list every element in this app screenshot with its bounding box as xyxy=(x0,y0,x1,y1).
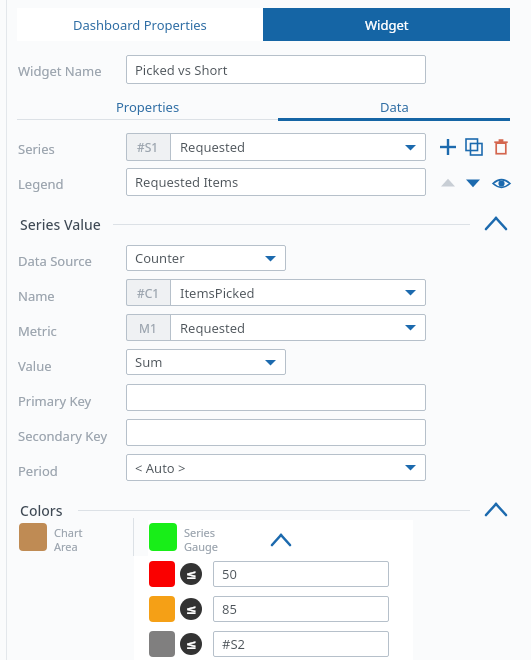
staticText: Sum xyxy=(135,353,163,371)
staticText: 50 xyxy=(222,565,237,583)
staticText: Name xyxy=(18,287,55,305)
staticText: ItemsPicked xyxy=(180,284,255,302)
button[interactable]: Properties xyxy=(17,96,278,118)
staticText: ≤ xyxy=(186,602,197,617)
button[interactable]: Widget xyxy=(263,8,510,41)
staticText: M1 xyxy=(139,320,157,336)
staticText: Colors xyxy=(20,501,63,520)
staticText: Series xyxy=(18,140,55,158)
staticText: Requested xyxy=(180,138,246,156)
button[interactable]: Move up xyxy=(437,172,459,194)
button[interactable]: Widget Name xyxy=(126,55,426,84)
button[interactable]: Series Value xyxy=(482,212,510,234)
button[interactable]: Threshold 85 xyxy=(213,596,389,622)
button[interactable]: Metric xyxy=(126,314,426,341)
staticText: Legend xyxy=(18,175,64,193)
staticText: #S1 xyxy=(137,139,159,155)
staticText: 85 xyxy=(222,600,237,618)
staticText: ≤ xyxy=(186,637,197,652)
staticText: < Auto > xyxy=(135,459,186,477)
button[interactable]: Data Source xyxy=(126,245,286,271)
button[interactable]: Color swatch xyxy=(149,523,177,551)
button[interactable]: Period xyxy=(126,454,426,481)
staticText: Properties xyxy=(116,98,180,116)
button[interactable]: Less than or equal xyxy=(180,598,202,620)
staticText: Picked vs Short xyxy=(135,61,228,79)
staticText: Metric xyxy=(18,322,57,340)
button[interactable]: Move down xyxy=(462,172,484,194)
staticText: Secondary Key xyxy=(18,427,108,445)
button[interactable]: Value xyxy=(126,349,286,375)
button[interactable]: Color swatch xyxy=(19,523,47,551)
staticText: Value xyxy=(18,357,52,375)
button[interactable]: Threshold S2 xyxy=(213,631,389,657)
staticText: Period xyxy=(18,462,58,480)
button[interactable]: Threshold 50 xyxy=(213,561,389,587)
button[interactable]: Color swatch xyxy=(149,561,175,587)
button[interactable]: Collapse series gauge xyxy=(268,529,294,550)
staticText: #C1 xyxy=(137,285,160,301)
button[interactable]: Secondary Key xyxy=(126,419,426,446)
staticText: Requested Items xyxy=(135,173,239,191)
staticText: Counter xyxy=(135,249,185,267)
button[interactable]: Visibility xyxy=(490,172,512,194)
button[interactable]: Name xyxy=(126,279,426,306)
button[interactable]: Color swatch xyxy=(149,596,175,622)
button[interactable]: Colors xyxy=(482,498,510,520)
staticText: Widget xyxy=(365,16,409,34)
staticText: #S2 xyxy=(222,635,245,653)
button[interactable]: Dashboard Properties xyxy=(17,8,263,41)
staticText: Data xyxy=(380,98,409,116)
staticText: Chart xyxy=(54,525,83,540)
button[interactable]: Duplicate xyxy=(463,136,485,158)
button[interactable]: Less than or equal xyxy=(180,633,202,655)
button[interactable]: Primary Key xyxy=(126,384,426,411)
staticText: Requested xyxy=(180,319,246,337)
staticText: Data Source xyxy=(18,252,92,270)
button[interactable]: Data xyxy=(278,96,510,118)
staticText: Series xyxy=(184,525,216,540)
staticText: Widget Name xyxy=(18,62,102,80)
staticText: Gauge xyxy=(184,539,218,554)
staticText: Series Value xyxy=(20,215,101,234)
staticText: Dashboard Properties xyxy=(73,16,207,34)
staticText: ≤ xyxy=(186,567,197,582)
button[interactable]: Less than or equal xyxy=(180,563,202,585)
button[interactable]: Add xyxy=(437,136,459,158)
button[interactable]: Legend xyxy=(126,168,426,196)
button[interactable]: Series xyxy=(126,133,426,161)
button[interactable]: Delete xyxy=(490,136,512,158)
button[interactable]: Color swatch xyxy=(149,631,175,657)
staticText: Area xyxy=(54,539,78,554)
staticText: Primary Key xyxy=(18,392,92,410)
